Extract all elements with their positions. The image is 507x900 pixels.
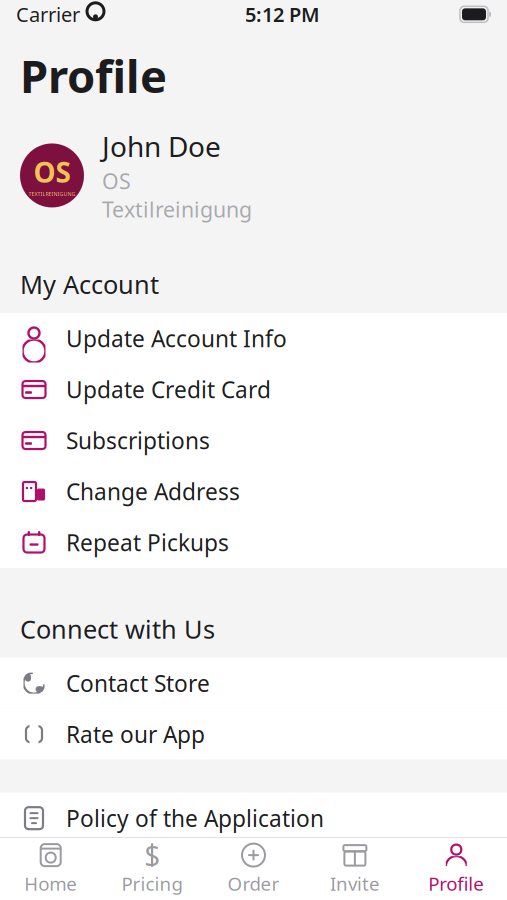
staticText: Home [24,871,77,896]
staticText: Subscriptions [66,425,210,456]
button[interactable]: Update Account Info [0,313,507,364]
staticText: Carrier [16,1,80,28]
button[interactable]: Invite [304,838,406,900]
staticText: Pricing [122,871,183,896]
staticText: OS Textilreinigung [102,167,252,223]
staticText: John Doe [102,127,221,165]
button[interactable]: Order [203,838,304,900]
button[interactable]: Home [0,838,101,900]
button[interactable]: Update Credit Card [0,364,507,415]
staticText: Update Credit Card [66,374,271,405]
staticText: Change Address [66,476,240,507]
button[interactable]: Profile [406,838,507,900]
button[interactable]: Repeat Pickups [0,517,507,568]
staticText: TEXTILREINIGUNG [28,190,75,198]
button[interactable]: Rate our App [0,709,507,760]
staticText: OS [33,153,70,190]
staticText: My Account [20,267,159,301]
button[interactable]: S [101,838,203,900]
button[interactable]: Log Out [0,844,507,895]
staticText: Order [227,871,279,896]
staticText: Rate our App [66,719,205,749]
staticText: Connect with Us [20,612,215,646]
staticText: S [145,836,160,874]
staticText: Invite [330,871,380,896]
staticText: 5:12 PM [245,1,320,28]
staticText: Policy of the Application [66,803,324,833]
staticText: Profile [20,45,167,105]
button[interactable]: Subscriptions [0,415,507,466]
staticText: Profile [428,871,484,896]
staticText: Repeat Pickups [66,527,229,558]
staticText: Log Out [66,854,152,884]
button[interactable]: Policy of the Application [0,793,507,844]
button[interactable]: Contact Store [0,658,507,709]
staticText: Contact Store [66,668,210,698]
staticText: Update Account Info [66,323,287,354]
button[interactable]: Change Address [0,466,507,517]
